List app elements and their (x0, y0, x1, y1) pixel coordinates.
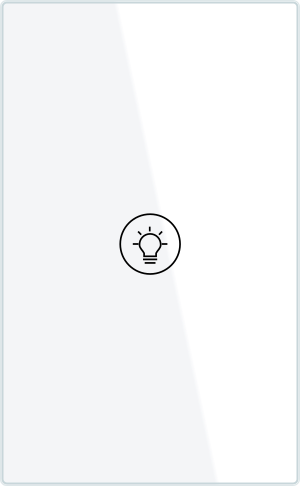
button[interactable]: Toggle light (0, 0, 300, 486)
